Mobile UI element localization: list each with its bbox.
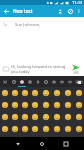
button[interactable]: Back (12, 138, 24, 150)
button[interactable]: Add people (55, 6, 65, 16)
staticText: SMS (73, 71, 80, 75)
button[interactable]: Emoji category 5 (34, 76, 42, 87)
button[interactable]: Emoji category 1 (0, 76, 9, 87)
button[interactable]: Emoji category 4 (26, 76, 34, 87)
button[interactable]: Send (69, 62, 83, 76)
button[interactable]: Emoji category 7 (50, 76, 58, 87)
button[interactable]: Back (1, 6, 12, 17)
staticText: you today (11, 69, 30, 74)
button[interactable]: Recent apps (60, 138, 72, 150)
button[interactable]: Emoji category 6 (42, 76, 50, 87)
staticText: New text (13, 8, 33, 14)
button[interactable]: Emoji category 3 (18, 76, 26, 87)
staticText: 11:13 (72, 0, 83, 5)
button[interactable]: Attach (65, 6, 75, 16)
staticText: Sue Johnson, (15, 22, 41, 28)
button[interactable]: Emoji category 9 (66, 76, 74, 87)
button[interactable]: Home (36, 138, 48, 150)
button[interactable]: Emoji category 8 (58, 76, 66, 87)
staticText: Hi, looking forward to seeing (11, 64, 66, 69)
button[interactable]: Emoji category 2 (9, 76, 18, 87)
staticText: To (3, 22, 7, 27)
button[interactable]: Backspace (74, 76, 84, 87)
button[interactable]: Message type (2, 65, 10, 73)
button[interactable]: More options (75, 7, 83, 15)
